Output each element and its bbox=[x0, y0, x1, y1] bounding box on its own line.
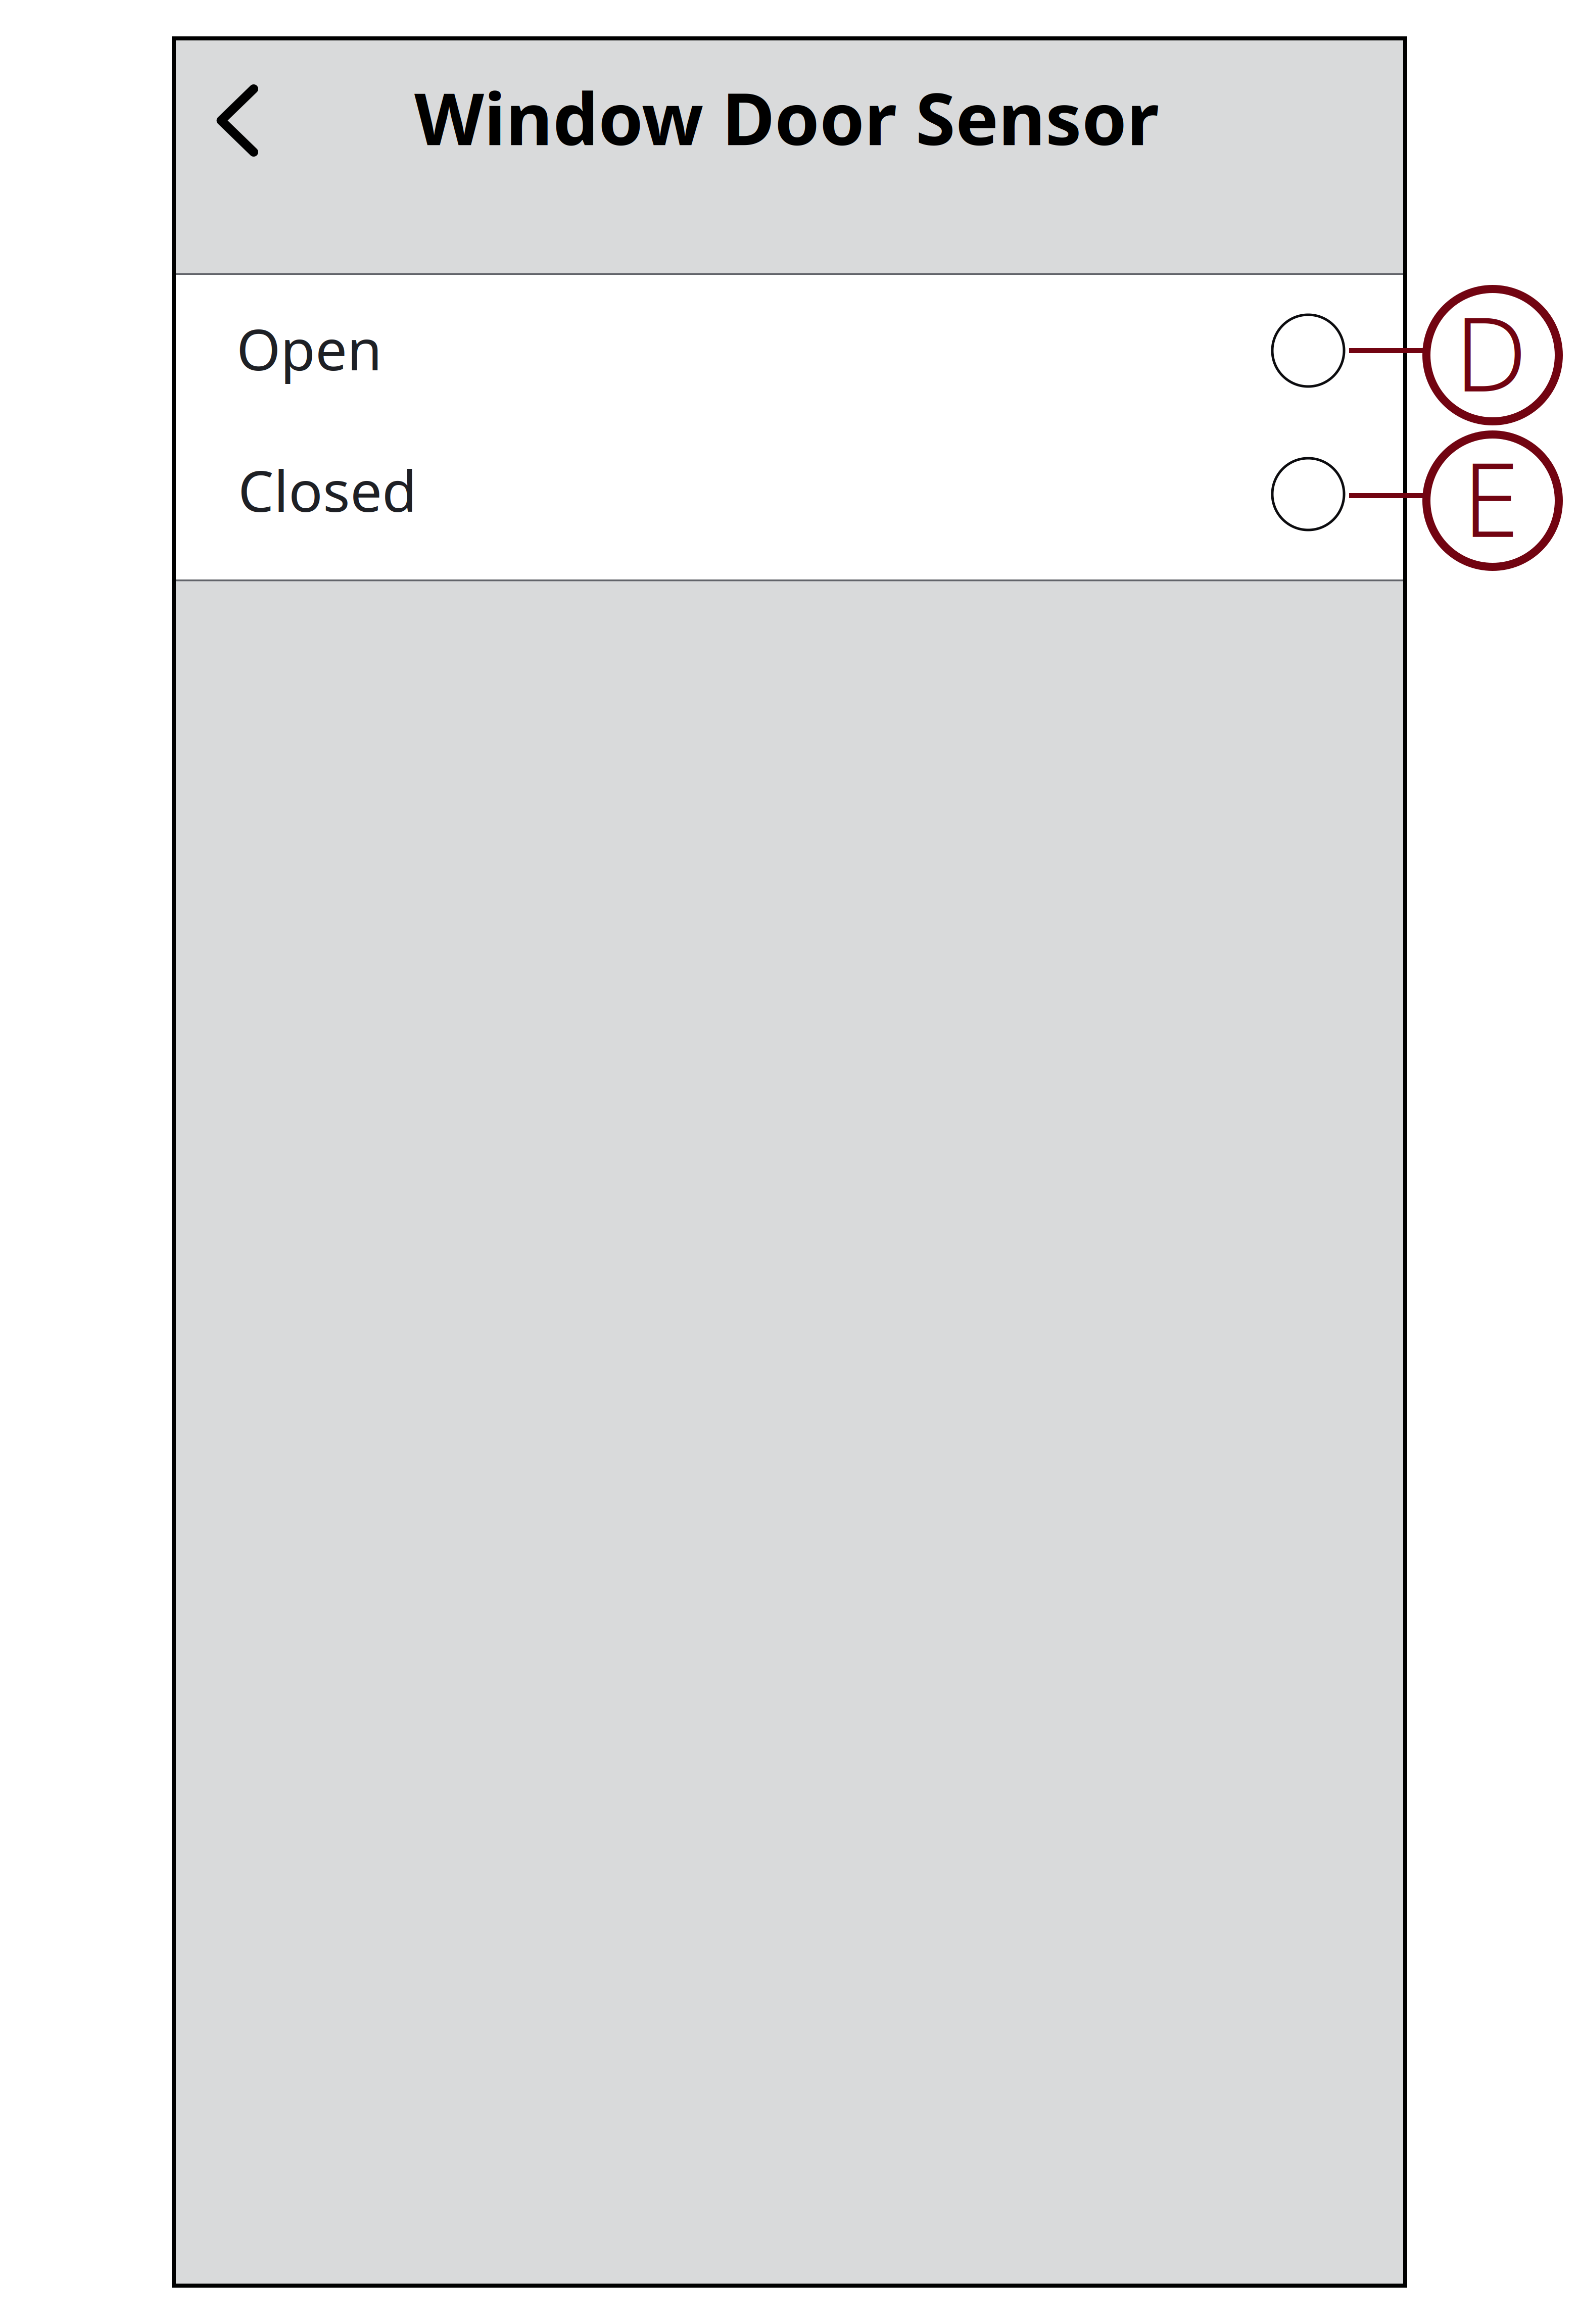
button[interactable]: Open bbox=[176, 272, 1403, 425]
button[interactable]: Closed bbox=[176, 413, 1403, 566]
staticText: Open bbox=[236, 311, 382, 386]
staticText: Window Door Sensor bbox=[414, 69, 1159, 165]
staticText: D bbox=[1454, 284, 1527, 420]
button[interactable]: Back bbox=[174, 53, 301, 189]
staticText: E bbox=[1463, 429, 1519, 565]
staticText: Closed bbox=[238, 452, 417, 527]
